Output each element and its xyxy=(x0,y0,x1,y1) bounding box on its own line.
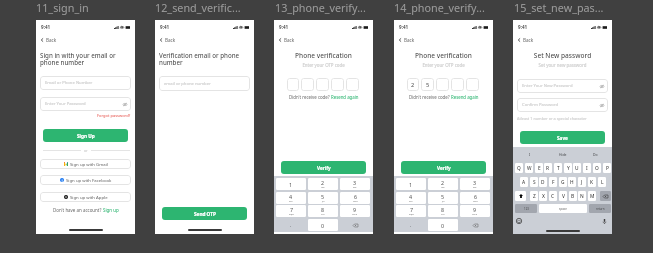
button[interactable] xyxy=(436,78,449,91)
button[interactable] xyxy=(287,78,299,91)
staticText: M xyxy=(590,193,595,200)
button[interactable]: Sign up with Gmail xyxy=(40,159,131,169)
button[interactable]: J xyxy=(578,177,586,187)
button[interactable] xyxy=(316,78,329,91)
button[interactable]: K xyxy=(588,177,596,187)
button[interactable]: Shift xyxy=(515,191,526,201)
button[interactable]: 5 xyxy=(308,192,338,204)
button[interactable]: 8 xyxy=(308,205,338,217)
button[interactable]: Back xyxy=(398,36,415,43)
button[interactable]: Back xyxy=(40,36,57,43)
button[interactable]: W xyxy=(525,163,533,173)
button[interactable]: 6 xyxy=(340,192,370,204)
button[interactable]: N xyxy=(578,191,586,201)
button[interactable]: 3 xyxy=(460,178,490,190)
button[interactable]: 4 xyxy=(396,192,426,204)
staticText: TUV xyxy=(321,213,325,216)
button[interactable]: Microphone xyxy=(601,218,607,224)
button[interactable]: 2 xyxy=(428,178,458,190)
button[interactable]: S xyxy=(530,177,538,187)
button[interactable]: 5 xyxy=(428,192,458,204)
button[interactable]: E xyxy=(535,163,543,173)
button[interactable]: G xyxy=(559,177,567,187)
button[interactable]: 9 xyxy=(460,205,490,217)
button[interactable]: Do xyxy=(579,149,612,160)
button[interactable]: Resend again xyxy=(451,94,479,100)
button[interactable]: Verify xyxy=(401,161,486,174)
button[interactable]: C xyxy=(549,191,557,201)
button[interactable]: Verify xyxy=(281,161,366,174)
button[interactable]: Y xyxy=(564,163,572,173)
button[interactable]: 1 xyxy=(276,178,306,190)
button[interactable] xyxy=(466,78,479,91)
button[interactable]: Emoji xyxy=(516,218,522,224)
button[interactable]: Backspace xyxy=(600,191,611,201)
button[interactable]: 7 xyxy=(396,205,426,217)
button[interactable]: return xyxy=(589,204,611,213)
button[interactable]: Q xyxy=(515,163,523,173)
button[interactable]: Sign Up xyxy=(43,129,128,142)
button[interactable]: Back xyxy=(517,36,534,43)
button[interactable]: Email or Phone Number xyxy=(40,76,131,90)
button[interactable]: email or phone number xyxy=(159,76,250,91)
button[interactable]: Enter Your Password xyxy=(40,97,131,111)
button[interactable]: 3 xyxy=(340,178,370,190)
button[interactable]: Backspace xyxy=(340,219,370,231)
staticText: Enter your OTP code xyxy=(274,62,373,68)
staticText: Email or Phone Number xyxy=(45,80,93,86)
staticText: Enter Your New Password xyxy=(522,83,573,89)
button[interactable]: 1 xyxy=(396,178,426,190)
button[interactable]: 5 xyxy=(421,78,434,91)
button[interactable]: B xyxy=(569,191,577,201)
button[interactable]: Enter Your New Password xyxy=(517,79,608,93)
button[interactable]: Resend again xyxy=(331,94,359,100)
button[interactable]: 2 xyxy=(407,78,419,91)
staticText: or xyxy=(84,148,88,153)
button[interactable]: space xyxy=(539,204,587,213)
button[interactable]: Backspace xyxy=(460,219,490,231)
button[interactable]: Back xyxy=(278,36,295,43)
button[interactable]: I xyxy=(513,149,546,160)
button[interactable]: R xyxy=(544,163,552,173)
button[interactable]: H xyxy=(568,177,576,187)
staticText: Z xyxy=(533,193,536,200)
button[interactable] xyxy=(346,78,359,91)
button[interactable]: Confirm Password xyxy=(517,98,608,112)
button[interactable]: O xyxy=(593,163,601,173)
button[interactable]: Send OTP xyxy=(162,207,247,220)
button[interactable]: U xyxy=(573,163,581,173)
button[interactable] xyxy=(451,78,464,91)
button[interactable]: P xyxy=(603,163,611,173)
button[interactable] xyxy=(301,78,314,91)
button[interactable]: Hide xyxy=(546,149,579,160)
button[interactable]: Forgot password? xyxy=(97,113,131,118)
button[interactable]: I xyxy=(583,163,591,173)
button[interactable]: V xyxy=(559,191,567,201)
button[interactable]: X xyxy=(539,191,547,201)
button[interactable]: 7 xyxy=(276,205,306,217)
button[interactable] xyxy=(331,78,344,91)
button[interactable]: Sign up with Facebook xyxy=(40,175,131,185)
button[interactable]: Sign up with Apple xyxy=(40,192,131,202)
button[interactable]: Z xyxy=(530,191,538,201)
button[interactable]: 0 xyxy=(308,219,338,231)
button[interactable]: 4 xyxy=(276,192,306,204)
button[interactable]: 6 xyxy=(460,192,490,204)
button[interactable]: 9 xyxy=(340,205,370,217)
button[interactable]: L xyxy=(598,177,606,187)
staticText: Back xyxy=(165,37,176,43)
button[interactable]: 2 xyxy=(308,178,338,190)
button[interactable]: T xyxy=(554,163,562,173)
button[interactable]: 123 xyxy=(515,204,537,213)
button[interactable]: F xyxy=(549,177,557,187)
button[interactable]: Save xyxy=(520,131,605,144)
button[interactable]: 0 xyxy=(428,219,458,231)
button[interactable]: Back xyxy=(159,36,176,43)
button[interactable]: D xyxy=(539,177,547,187)
button[interactable]: 8 xyxy=(428,205,458,217)
button[interactable]: A xyxy=(520,177,528,187)
button[interactable]: M xyxy=(588,191,596,201)
button[interactable]: Sign up xyxy=(103,207,119,213)
